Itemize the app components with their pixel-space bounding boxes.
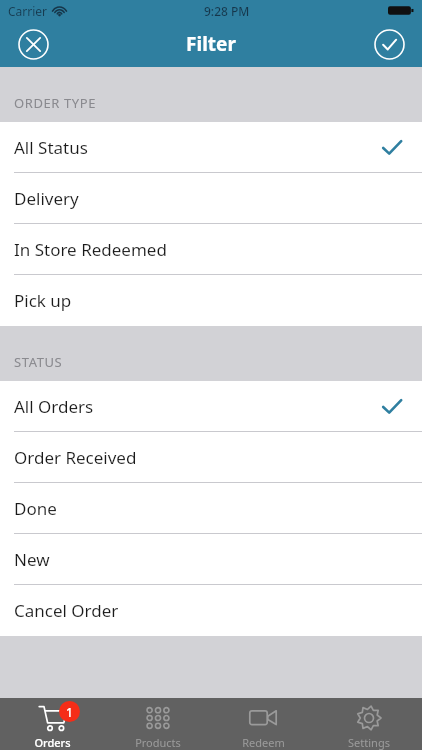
button[interactable]: Order Received [0,432,422,483]
button[interactable]: All Status [0,122,422,173]
staticText: ORDER TYPE [14,94,97,112]
staticText: Orders [34,735,71,750]
button[interactable]: New [0,534,422,585]
staticText: All Orders [14,395,94,418]
staticText: All Status [14,136,88,159]
staticText: Pick up [14,289,72,312]
staticText: Filter [186,31,236,57]
staticText: Cancel Order [14,599,119,622]
button[interactable]: In Store Redeemed [0,224,422,275]
staticText: Products [135,735,181,750]
staticText: Order Received [14,446,137,469]
button[interactable]: Apply filter [370,25,408,63]
button[interactable]: 1 [0,698,105,750]
button[interactable]: Done [0,483,422,534]
staticText: 9:28 PM [204,3,250,19]
button[interactable]: Cancel Order [0,585,422,636]
staticText: In Store Redeemed [14,238,167,261]
staticText: Carrier [8,3,48,19]
staticText: 1 [66,704,73,720]
staticText: New [14,548,50,571]
button[interactable]: Close [14,25,52,63]
button[interactable]: Pick up [0,275,422,326]
button[interactable]: Settings [316,698,422,750]
staticText: Redeem [242,735,285,750]
button[interactable]: All Orders [0,381,422,432]
staticText: Done [14,497,57,520]
staticText: Delivery [14,187,79,210]
button[interactable]: Delivery [0,173,422,224]
staticText: STATUS [14,353,63,371]
staticText: Settings [348,735,390,750]
button[interactable]: Products [105,698,210,750]
button[interactable]: Redeem [210,698,316,750]
